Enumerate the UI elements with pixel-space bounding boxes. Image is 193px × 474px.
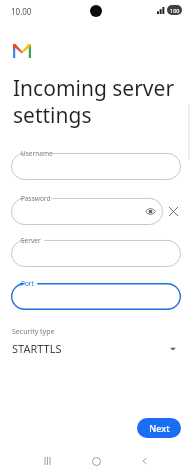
staticText: Username bbox=[21, 149, 53, 158]
staticText: 10.00 bbox=[11, 6, 32, 17]
staticText: Incoming server settings bbox=[13, 74, 175, 129]
button[interactable]: Home bbox=[88, 453, 104, 469]
staticText: Next bbox=[149, 422, 170, 434]
button[interactable]: Server bbox=[11, 240, 181, 267]
staticText: Server bbox=[21, 236, 41, 245]
staticText: Password bbox=[21, 194, 51, 203]
button[interactable]: Port bbox=[11, 283, 181, 310]
staticText: Security type bbox=[12, 327, 55, 337]
button[interactable]: Security type bbox=[11, 327, 181, 361]
staticText: STARTTLS bbox=[12, 341, 62, 356]
button[interactable]: Recent apps bbox=[40, 453, 56, 469]
staticText: 100 bbox=[170, 7, 180, 14]
button[interactable]: Password bbox=[11, 198, 163, 225]
button[interactable]: Username bbox=[11, 153, 181, 180]
staticText: Port bbox=[21, 279, 34, 288]
button[interactable]: Back bbox=[137, 453, 153, 469]
button[interactable]: Next bbox=[137, 418, 181, 438]
button[interactable]: Show password bbox=[142, 203, 159, 220]
button[interactable]: Clear password bbox=[165, 203, 182, 220]
